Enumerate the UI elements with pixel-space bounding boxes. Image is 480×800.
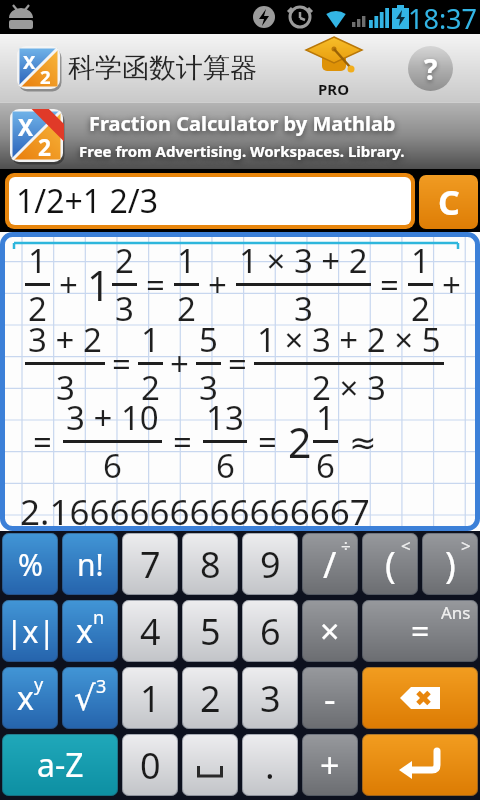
button[interactable]: % (2, 533, 58, 595)
button[interactable]: x (2, 667, 58, 729)
button[interactable]: n! (62, 533, 118, 595)
staticText: a-Z (37, 743, 84, 787)
staticText: 3 (260, 674, 281, 723)
staticText: 3 (294, 286, 313, 331)
staticText: ≈ (349, 423, 377, 461)
staticText: 7 (140, 540, 161, 589)
staticText: 2 (200, 674, 221, 723)
button[interactable]: 0 (122, 734, 178, 796)
button[interactable]: 2 (182, 667, 238, 729)
staticText: 2 (28, 286, 47, 331)
staticText: 9 (260, 540, 281, 589)
staticText: 1 (141, 317, 160, 362)
staticText: n! (77, 544, 104, 585)
staticText: 2 (38, 132, 51, 163)
button[interactable]: |x| (2, 600, 58, 662)
staticText: < (401, 534, 411, 557)
staticText: 5 (200, 607, 221, 656)
button[interactable]: ( (362, 533, 418, 595)
staticText: 6 (216, 443, 235, 488)
button[interactable]: ) (422, 533, 478, 595)
staticText: / (323, 540, 337, 589)
staticText: 8 (200, 540, 221, 589)
staticText: 2 (288, 414, 312, 470)
staticText: = (173, 419, 192, 464)
staticText: 1 × 3 + 2 × 5 (257, 317, 441, 362)
staticText: 1 (28, 238, 47, 283)
staticText: + (59, 262, 78, 307)
staticText: 2 (411, 286, 430, 331)
staticText: 科学函数计算器 (68, 51, 257, 85)
staticText: ÷ (341, 534, 351, 557)
staticText: 13 (206, 395, 244, 440)
button[interactable]: C (419, 175, 478, 229)
staticText: 2 (115, 238, 134, 283)
staticText: x (17, 676, 34, 720)
staticText: 2 (141, 365, 160, 410)
staticText: 1 (87, 257, 111, 313)
button[interactable] (362, 667, 478, 729)
staticText: % (18, 544, 43, 585)
button[interactable]: 8 (182, 533, 238, 595)
button[interactable]: x (62, 600, 118, 662)
staticText: × (320, 608, 340, 654)
button[interactable] (362, 734, 478, 796)
staticText: + (442, 262, 461, 307)
staticText: 3 (56, 365, 75, 410)
staticText: √ (74, 678, 96, 718)
button[interactable]: 6 (242, 600, 298, 662)
staticText: 0 (140, 741, 161, 790)
staticText: 2 (177, 286, 196, 331)
staticText: 5 (199, 317, 218, 362)
staticText: = (380, 262, 399, 307)
button[interactable]: X (17, 46, 61, 90)
staticText: X (23, 49, 36, 74)
staticText: 3 (96, 674, 107, 699)
staticText: n (93, 605, 105, 630)
staticText: = (33, 419, 52, 464)
staticText: = (146, 262, 165, 307)
staticText: ) (445, 540, 456, 589)
staticText: 1 (177, 238, 196, 283)
staticText: 2 × 3 (312, 365, 386, 410)
button[interactable]: X (0, 102, 480, 169)
staticText: 2.1666666666666667 (20, 488, 370, 536)
staticText: Fraction Calculator by Mathlab (89, 110, 396, 137)
staticText: 6 (103, 443, 122, 488)
button[interactable]: 1/2+1 2/3 (5, 173, 415, 229)
button[interactable]: = (362, 600, 478, 662)
button[interactable]: - (302, 667, 358, 729)
button[interactable]: / (302, 533, 358, 595)
staticText: = (228, 341, 247, 386)
button[interactable]: × (302, 600, 358, 662)
staticText: > (461, 534, 471, 557)
button[interactable]: √ (62, 667, 118, 729)
button[interactable]: 9 (242, 533, 298, 595)
staticText: + (170, 341, 189, 386)
staticText: Ans (441, 601, 471, 624)
staticText: y (34, 672, 44, 697)
staticText: + (208, 262, 227, 307)
staticText: 3 (199, 365, 218, 410)
staticText: . (265, 741, 275, 790)
button[interactable]: PRO (305, 37, 363, 99)
staticText: 3 + 2 (28, 317, 102, 362)
staticText: C (438, 179, 460, 225)
staticText: 1 (316, 395, 335, 440)
staticText: + (320, 742, 340, 788)
staticText: 6 (260, 607, 281, 656)
button[interactable]: + (302, 734, 358, 796)
button[interactable]: 5 (182, 600, 238, 662)
staticText: = (411, 609, 430, 653)
staticText: 1 (411, 238, 430, 283)
staticText: ? (424, 50, 438, 88)
button[interactable]: 1 (122, 667, 178, 729)
staticText: Free from Advertising. Workspaces. Libra… (79, 141, 405, 161)
button[interactable]: . (242, 734, 298, 796)
button[interactable]: ? (408, 46, 453, 91)
button[interactable] (182, 734, 238, 796)
button[interactable]: 3 (242, 667, 298, 729)
button[interactable]: 7 (122, 533, 178, 595)
button[interactable]: a-Z (2, 734, 118, 796)
button[interactable]: 4 (122, 600, 178, 662)
